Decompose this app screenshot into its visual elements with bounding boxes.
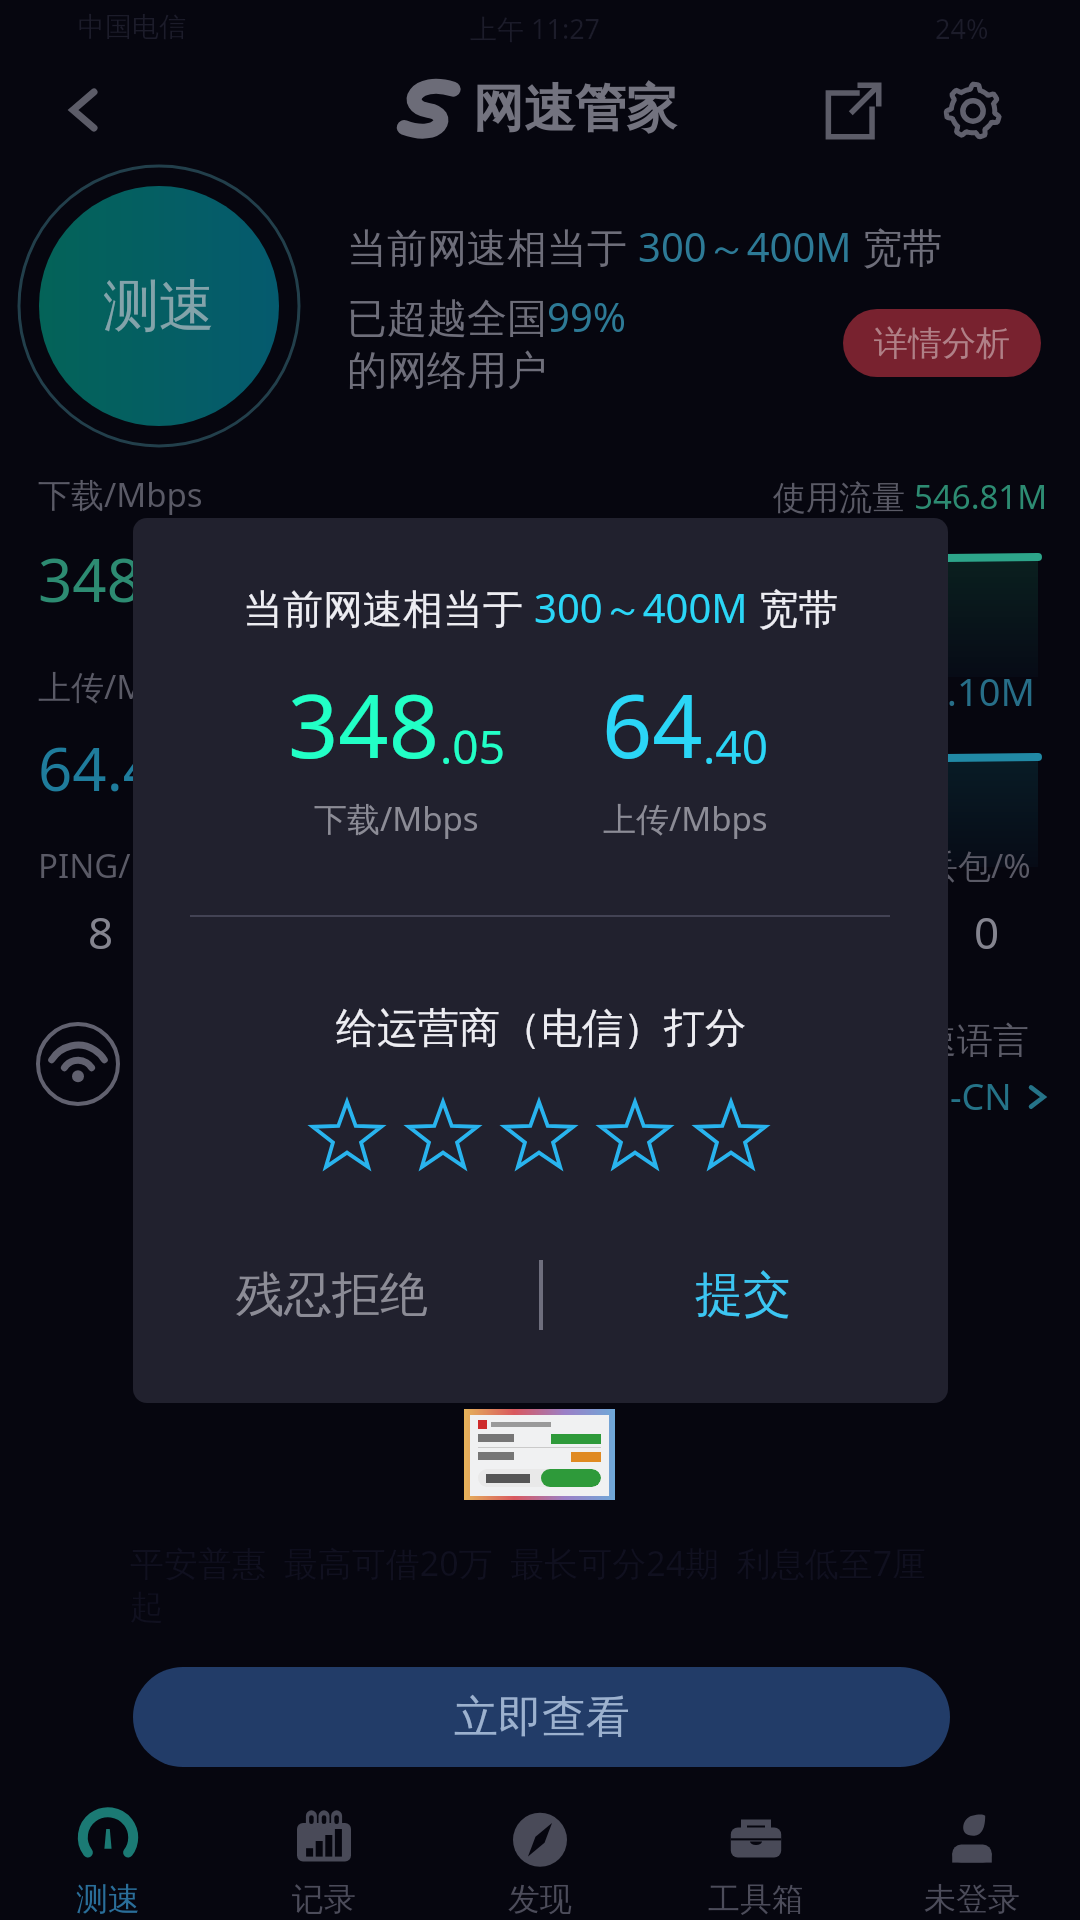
- staticText: 下载/Mbps: [314, 796, 479, 841]
- staticText: 残忍拒绝: [236, 1265, 428, 1325]
- staticText: 宽带: [748, 580, 839, 635]
- staticText: 的网络用户: [347, 345, 547, 395]
- staticText: 发现: [508, 1879, 572, 1919]
- button[interactable]: Network type: [36, 1022, 120, 1106]
- button[interactable]: 记录: [216, 1793, 432, 1919]
- staticText: 348: [288, 664, 440, 784]
- staticText: 2.10M: [925, 665, 1035, 717]
- button[interactable]: 详情分析: [843, 309, 1041, 377]
- button[interactable]: 测速: [39, 186, 279, 426]
- staticText: 平安普惠 最高可借20万 最长可分24期 利息低至7厘: [130, 1540, 927, 1586]
- staticText: 记录: [292, 1879, 356, 1919]
- staticText: 下载/Mbps: [38, 472, 203, 517]
- staticText: 上午 11:27: [470, 10, 601, 47]
- staticText: 中文-CN: [878, 1072, 1012, 1121]
- staticText: .40: [703, 715, 768, 778]
- button[interactable]: 中文-CN: [878, 1072, 1052, 1121]
- staticText: 99%: [547, 289, 626, 343]
- staticText: 详情分析: [874, 322, 1010, 365]
- button[interactable]: Share: [810, 68, 896, 154]
- staticText: 0: [974, 902, 1000, 962]
- staticText: 测速: [103, 271, 215, 342]
- staticText: 工具箱: [708, 1879, 804, 1919]
- staticText: 起: [130, 1586, 164, 1629]
- staticText: 上传/Mbps: [603, 796, 768, 841]
- staticText: 546.81M: [914, 474, 1048, 519]
- button[interactable]: 工具箱: [648, 1793, 864, 1919]
- staticText: 上传/Mbps: [38, 664, 203, 709]
- staticText: 测速: [76, 1879, 140, 1919]
- staticText: 给运营商（电信）打分: [336, 1003, 746, 1055]
- staticText: 348.05: [38, 538, 226, 620]
- staticText: 网速管家: [473, 77, 677, 141]
- staticText: 64: [602, 664, 703, 784]
- button[interactable]: 未登录: [864, 1793, 1080, 1919]
- staticText: 提交: [695, 1265, 791, 1325]
- button[interactable]: Rate 3 stars: [491, 1087, 587, 1183]
- staticText: 立即查看: [454, 1690, 630, 1745]
- staticText: PING/ms: [38, 843, 178, 888]
- staticText: 当前网速相当于: [243, 580, 534, 635]
- staticText: 宽带: [852, 219, 943, 274]
- button[interactable]: Back: [42, 68, 126, 152]
- staticText: 当前网速相当于: [347, 219, 638, 274]
- button[interactable]: 立即查看: [133, 1667, 950, 1767]
- button[interactable]: 发现: [432, 1793, 648, 1919]
- button[interactable]: Settings: [930, 68, 1016, 154]
- staticText: 测速语言: [885, 1018, 1029, 1063]
- button[interactable]: [464, 1409, 615, 1500]
- staticText: 使用流量: [773, 474, 914, 519]
- staticText: 8: [88, 902, 114, 962]
- button[interactable]: 提交: [665, 1243, 821, 1347]
- staticText: 64.40: [38, 727, 192, 809]
- button[interactable]: 残忍拒绝: [206, 1243, 458, 1347]
- staticText: 丢包/%: [925, 843, 1031, 888]
- button[interactable]: 测速: [0, 1793, 216, 1919]
- staticText: 中国电信: [78, 10, 186, 44]
- button[interactable]: Rate 2 stars: [395, 1087, 491, 1183]
- staticText: 300～400M: [534, 580, 748, 635]
- staticText: 已超越全国: [347, 293, 547, 343]
- button[interactable]: Rate 5 stars: [683, 1087, 779, 1183]
- button[interactable]: Rate 1 stars: [299, 1087, 395, 1183]
- staticText: .05: [440, 715, 505, 778]
- staticText: 未登录: [924, 1879, 1020, 1919]
- staticText: 300～400M: [638, 219, 852, 274]
- staticText: 24%: [935, 10, 989, 47]
- button[interactable]: Rate 4 stars: [587, 1087, 683, 1183]
